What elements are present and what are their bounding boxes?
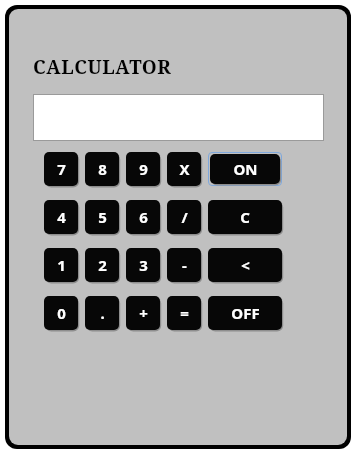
staticText: 2 bbox=[98, 255, 107, 275]
staticText: 7 bbox=[57, 159, 66, 179]
button[interactable]: / bbox=[167, 200, 201, 234]
button[interactable]: 4 bbox=[44, 200, 78, 234]
staticText: 6 bbox=[139, 207, 148, 227]
staticText: C bbox=[240, 207, 250, 227]
button[interactable]: . bbox=[85, 296, 119, 330]
button[interactable]: = bbox=[167, 296, 201, 330]
other: Divide bbox=[167, 200, 201, 234]
button[interactable]: - bbox=[167, 248, 201, 282]
staticText: CALCULATOR bbox=[33, 54, 172, 80]
button[interactable]: 1 bbox=[44, 248, 78, 282]
staticText: 5 bbox=[98, 207, 107, 227]
button[interactable] bbox=[33, 94, 324, 141]
button[interactable]: < bbox=[208, 248, 282, 282]
staticText: / bbox=[181, 207, 188, 227]
staticText: 8 bbox=[98, 159, 107, 179]
button[interactable]: 9 bbox=[126, 152, 160, 186]
other: Add bbox=[126, 296, 160, 330]
button[interactable]: ON bbox=[210, 154, 280, 184]
staticText: = bbox=[180, 303, 189, 323]
staticText: 4 bbox=[57, 207, 66, 227]
other: Decimal point bbox=[85, 296, 119, 330]
staticText: < bbox=[241, 255, 250, 275]
other: Subtract bbox=[167, 248, 201, 282]
button[interactable]: 5 bbox=[85, 200, 119, 234]
button[interactable]: + bbox=[126, 296, 160, 330]
button[interactable]: 8 bbox=[85, 152, 119, 186]
other: Backspace bbox=[208, 248, 282, 282]
other: Multiply bbox=[167, 152, 201, 186]
staticText: OFF bbox=[231, 303, 260, 323]
staticText: 1 bbox=[57, 255, 66, 275]
staticText: 3 bbox=[139, 255, 148, 275]
staticText: + bbox=[139, 303, 148, 323]
staticText: X bbox=[179, 159, 190, 179]
button[interactable]: 7 bbox=[44, 152, 78, 186]
button[interactable]: 6 bbox=[126, 200, 160, 234]
button[interactable]: 0 bbox=[44, 296, 78, 330]
button[interactable]: X bbox=[167, 152, 201, 186]
button[interactable]: 3 bbox=[126, 248, 160, 282]
button[interactable]: 2 bbox=[85, 248, 119, 282]
staticText: ON bbox=[233, 159, 258, 179]
staticText: - bbox=[182, 255, 187, 275]
staticText: 9 bbox=[139, 159, 148, 179]
button[interactable]: C bbox=[208, 200, 282, 234]
other: Equals bbox=[167, 296, 201, 330]
button[interactable]: OFF bbox=[208, 296, 282, 330]
staticText: . bbox=[100, 303, 105, 323]
staticText: 0 bbox=[57, 303, 66, 323]
